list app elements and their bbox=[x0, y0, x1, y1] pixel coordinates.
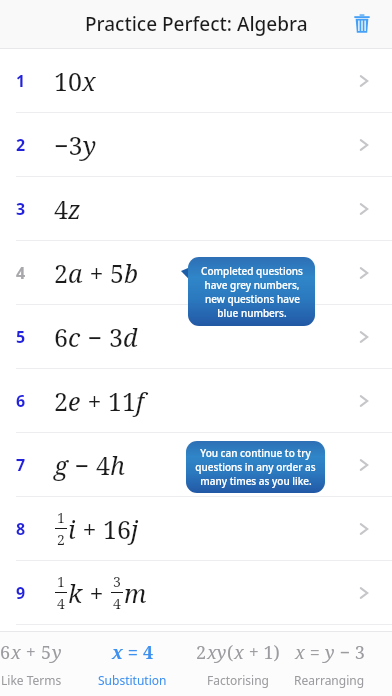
staticText: 2 bbox=[54, 256, 68, 290]
staticText: You can continue to try bbox=[200, 446, 311, 460]
staticText: e bbox=[68, 384, 81, 418]
staticText: m bbox=[124, 576, 147, 610]
button[interactable]: 2 bbox=[0, 113, 392, 177]
staticText: Like Terms bbox=[1, 672, 62, 688]
staticText: c bbox=[68, 320, 81, 354]
button[interactable]: 1 bbox=[0, 49, 392, 113]
staticText: 4 bbox=[57, 594, 65, 613]
staticText: a bbox=[68, 256, 83, 290]
staticText: y bbox=[52, 640, 62, 665]
staticText: 11 bbox=[108, 384, 136, 418]
staticText: −3 bbox=[54, 128, 83, 162]
staticText: x bbox=[112, 640, 123, 665]
staticText: + bbox=[83, 576, 110, 610]
staticText: 5 bbox=[110, 256, 124, 290]
staticText: 1 bbox=[57, 508, 65, 527]
staticText: g bbox=[54, 448, 68, 482]
staticText: d bbox=[123, 320, 138, 354]
staticText: Factorising bbox=[207, 672, 270, 688]
staticText: + bbox=[83, 256, 110, 290]
staticText: − bbox=[81, 320, 109, 354]
staticText: 2 bbox=[196, 640, 207, 665]
staticText: 3 bbox=[109, 320, 123, 354]
button[interactable]: x bbox=[294, 632, 365, 696]
button[interactable]: 4 bbox=[0, 241, 392, 305]
staticText: 5 bbox=[16, 326, 26, 348]
staticText: x bbox=[82, 64, 96, 98]
staticText: y bbox=[83, 128, 97, 162]
button[interactable]: 8 bbox=[0, 497, 392, 561]
staticText: 4 bbox=[96, 448, 110, 482]
staticText: 10 bbox=[54, 64, 82, 98]
staticText: k bbox=[68, 576, 83, 610]
staticText: 2 bbox=[57, 530, 65, 549]
staticText: xy bbox=[207, 640, 227, 665]
button[interactable]: Delete all progress bbox=[346, 8, 378, 40]
staticText: questions in any order as bbox=[195, 460, 316, 474]
staticText: x bbox=[234, 640, 244, 665]
staticText: − 3 bbox=[335, 640, 365, 665]
staticText: Completed questions bbox=[201, 264, 303, 278]
staticText: x bbox=[295, 640, 305, 665]
staticText: x bbox=[11, 640, 21, 665]
staticText: + 1) bbox=[244, 640, 280, 665]
staticText: 6 bbox=[0, 640, 11, 665]
button[interactable]: x bbox=[98, 632, 167, 696]
staticText: f bbox=[136, 384, 144, 418]
staticText: 16 bbox=[103, 512, 131, 546]
staticText: 3 bbox=[16, 198, 26, 220]
staticText: 1 bbox=[16, 70, 26, 92]
staticText: Substitution bbox=[98, 672, 167, 688]
staticText: + bbox=[81, 384, 108, 418]
button[interactable]: 6 bbox=[0, 369, 392, 433]
staticText: 2 bbox=[54, 384, 68, 418]
staticText: 8 bbox=[16, 518, 26, 540]
staticText: Rearranging bbox=[294, 672, 365, 688]
staticText: 4 bbox=[113, 594, 121, 613]
staticText: i bbox=[68, 512, 76, 546]
staticText: b bbox=[124, 256, 139, 290]
button[interactable]: 5 bbox=[0, 305, 392, 369]
staticText: ( bbox=[227, 640, 234, 665]
staticText: 6 bbox=[16, 390, 26, 412]
staticText: have grey numbers, bbox=[204, 278, 300, 292]
staticText: + bbox=[21, 640, 41, 665]
staticText: 9 bbox=[16, 582, 26, 604]
staticText: j bbox=[131, 512, 139, 546]
staticText: new questions have bbox=[205, 292, 300, 306]
button[interactable]: 7 bbox=[0, 433, 392, 497]
staticText: 5 bbox=[41, 640, 52, 665]
staticText: 7 bbox=[16, 454, 26, 476]
staticText: Practice Perfect: Algebra bbox=[85, 11, 308, 37]
staticText: y bbox=[325, 640, 335, 665]
staticText: 6 bbox=[54, 320, 68, 354]
button[interactable]: 6 bbox=[0, 632, 62, 696]
staticText: − bbox=[68, 448, 96, 482]
staticText: 1 bbox=[57, 572, 65, 591]
staticText: = bbox=[123, 640, 143, 665]
button[interactable]: 2 bbox=[196, 632, 280, 696]
button[interactable]: 3 bbox=[0, 177, 392, 241]
staticText: h bbox=[110, 448, 125, 482]
staticText: 4 bbox=[143, 640, 154, 665]
staticText: 4 bbox=[54, 192, 68, 226]
staticText: 4 bbox=[16, 262, 26, 284]
staticText: z bbox=[68, 192, 81, 226]
staticText: many times as you like. bbox=[200, 474, 312, 488]
staticText: 2 bbox=[16, 134, 26, 156]
staticText: blue numbers. bbox=[217, 306, 287, 320]
staticText: 3 bbox=[113, 572, 121, 591]
button[interactable]: 9 bbox=[0, 561, 392, 625]
staticText: + bbox=[76, 512, 103, 546]
staticText: = bbox=[305, 640, 325, 665]
